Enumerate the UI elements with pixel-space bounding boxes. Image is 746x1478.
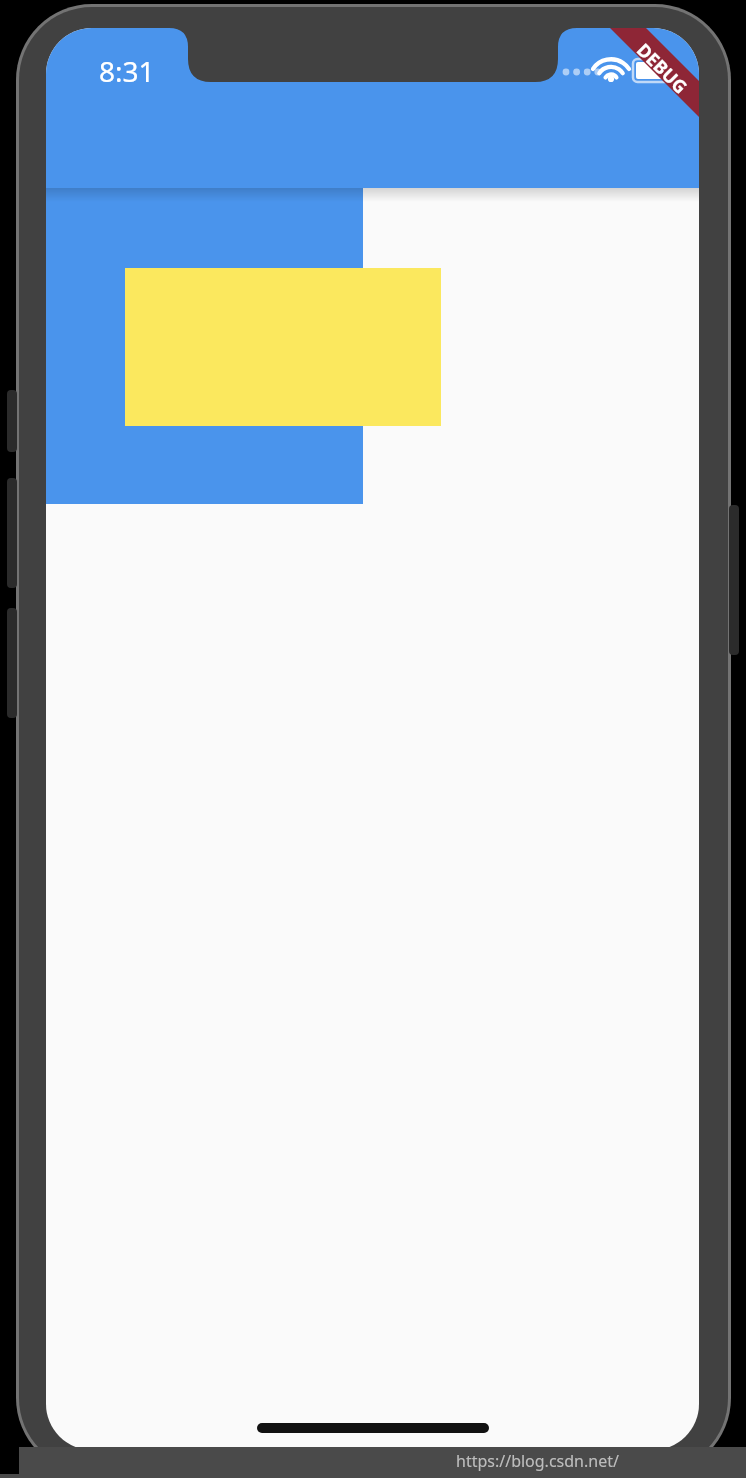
staticText: DEBUG <box>631 38 693 99</box>
staticText: https://blog.csdn.net/weixin_42215775 <box>456 1450 738 1476</box>
staticText: 8:31 <box>99 52 155 90</box>
button[interactable]: App bar <box>46 28 699 188</box>
